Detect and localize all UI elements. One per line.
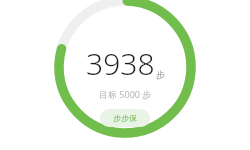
staticText: 步 xyxy=(156,69,165,80)
staticText: 3938 xyxy=(86,43,155,84)
other: Step counter ring xyxy=(0,0,250,150)
button[interactable]: 步步保 xyxy=(100,109,150,127)
staticText: 步步保 xyxy=(113,113,137,123)
staticText: 目标 5000 步 xyxy=(99,88,152,100)
